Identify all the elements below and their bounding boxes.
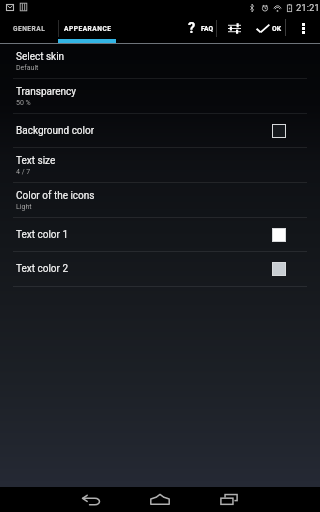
staticText: 4 / 7 [16, 168, 31, 176]
button[interactable]: Transparency [0, 79, 320, 114]
staticText: Light [16, 203, 32, 211]
button[interactable]: Text color 2 [0, 252, 320, 287]
button[interactable]: More options [289, 14, 317, 43]
button[interactable]: Text size [0, 148, 320, 183]
button[interactable]: GENERAL [0, 14, 58, 43]
staticText: Color of the icons [16, 190, 95, 202]
staticText: APPEARANCE [64, 25, 112, 33]
staticText: Text size [16, 155, 56, 167]
button[interactable]: OK [252, 14, 285, 43]
staticText: FAQ [201, 25, 213, 33]
button[interactable]: ? [184, 14, 216, 43]
staticText: Select skin [16, 51, 65, 63]
button[interactable]: Select skin [0, 44, 320, 79]
staticText: Background color [16, 125, 95, 137]
button[interactable]: Text color 1 [0, 218, 320, 252]
button[interactable]: Background color [0, 114, 320, 148]
staticText: OK [272, 25, 282, 33]
button[interactable]: Adjust settings [221, 14, 247, 43]
staticText: 50 % [16, 99, 31, 107]
staticText: Transparency [16, 86, 77, 98]
button[interactable]: Recent apps [204, 487, 254, 512]
staticText: Default [16, 64, 39, 72]
staticText: 21:21 [296, 2, 320, 13]
staticText: GENERAL [13, 25, 46, 33]
button[interactable]: APPEARANCE [59, 14, 116, 43]
staticText: ? [188, 20, 196, 37]
staticText: Text color 1 [16, 229, 69, 241]
button[interactable]: Back [66, 487, 116, 512]
staticText: Text color 2 [16, 263, 69, 275]
button[interactable]: Color of the icons [0, 183, 320, 218]
button[interactable]: Home [135, 487, 185, 512]
